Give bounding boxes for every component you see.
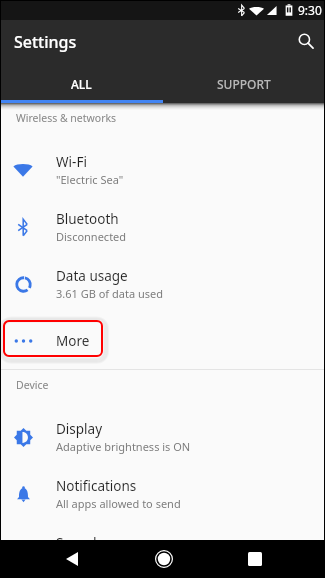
- button[interactable]: SUPPORT: [162, 64, 325, 103]
- staticText: Wi-Fi: [56, 153, 87, 171]
- staticText: Disconnected: [56, 229, 127, 244]
- button[interactable]: Wi-Fi: [0, 141, 325, 198]
- staticText: Display: [56, 420, 103, 438]
- staticText: 9:30: [298, 2, 322, 18]
- button[interactable]: Recents: [234, 540, 275, 578]
- staticText: SUPPORT: [217, 76, 271, 92]
- staticText: Wireless & networks: [16, 111, 117, 125]
- staticText: All apps allowed to send: [56, 496, 181, 511]
- staticText: "Electric Sea": [56, 172, 124, 187]
- button[interactable]: Notifications: [0, 465, 325, 522]
- button[interactable]: Data usage: [0, 255, 325, 312]
- staticText: 3.61 GB of data used: [56, 286, 163, 301]
- button[interactable]: Home: [143, 540, 184, 578]
- staticText: Adaptive brightness is ON: [56, 439, 191, 454]
- button[interactable]: Search: [289, 25, 323, 59]
- staticText: Data usage: [56, 267, 128, 285]
- button[interactable]: Display: [0, 408, 325, 465]
- staticText: Notifications: [56, 477, 137, 495]
- staticText: Settings: [14, 31, 77, 53]
- staticText: Sound: [56, 534, 97, 540]
- button[interactable]: Sound: [0, 522, 325, 540]
- staticText: Bluetooth: [56, 210, 119, 228]
- staticText: ALL: [71, 76, 92, 92]
- staticText: More: [56, 332, 90, 350]
- button[interactable]: ALL: [0, 64, 162, 103]
- staticText: Device: [16, 378, 49, 392]
- button[interactable]: Back: [51, 540, 92, 578]
- button[interactable]: Bluetooth: [0, 198, 325, 255]
- button[interactable]: More: [0, 312, 325, 369]
